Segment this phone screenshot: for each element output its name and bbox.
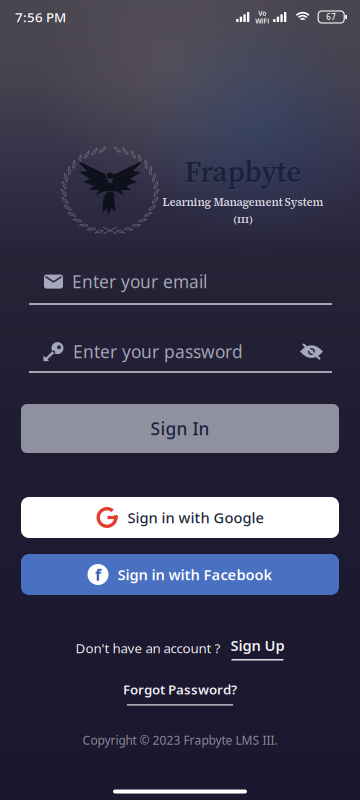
staticText: Forgot Password? (123, 680, 237, 698)
button[interactable]: Forgot Password? (123, 680, 237, 706)
staticText: Enter your email (72, 270, 207, 293)
staticText: Sign in with Google (127, 508, 263, 527)
staticText: 7:56 PM (15, 8, 66, 26)
staticText: Sign Up (230, 635, 284, 655)
staticText: Frapbyte (184, 152, 301, 192)
button[interactable]: Sign in with Google (21, 497, 339, 538)
button[interactable]: f (21, 554, 339, 595)
staticText: (III) (233, 213, 253, 226)
staticText: Learning Management System (162, 195, 323, 209)
button[interactable]: Sign Up (230, 635, 284, 661)
staticText: Sign In (150, 417, 209, 440)
staticText: Enter your password (73, 340, 243, 363)
staticText: f (95, 564, 101, 585)
staticText: WiFi (255, 16, 269, 25)
staticText: 67 (326, 12, 336, 22)
button[interactable]: Enter your email (29, 270, 332, 305)
staticText: Copyright © 2023 Frapbyte LMS III. (82, 732, 277, 748)
button[interactable]: Enter your password (29, 340, 332, 373)
button[interactable]: Sign In (21, 404, 339, 453)
staticText: Sign in with Facebook (117, 565, 272, 584)
staticText: Vo (258, 9, 266, 17)
staticText: Don't have an account ? (75, 639, 220, 657)
staticText: Frapbyte (185, 152, 302, 193)
